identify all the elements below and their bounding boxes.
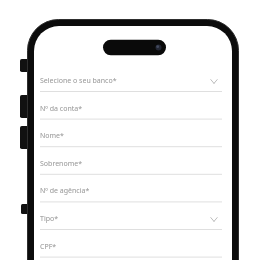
button[interactable]: Nº de agência* xyxy=(40,180,222,202)
button[interactable]: Nome* xyxy=(40,125,222,147)
button[interactable]: Tipo* xyxy=(40,208,222,230)
button[interactable]: Sobrenome* xyxy=(40,153,222,175)
button[interactable]: Selecione o seu banco* xyxy=(40,70,222,92)
button[interactable]: Nº da conta* xyxy=(40,98,222,120)
button[interactable]: CPF* xyxy=(40,236,222,258)
